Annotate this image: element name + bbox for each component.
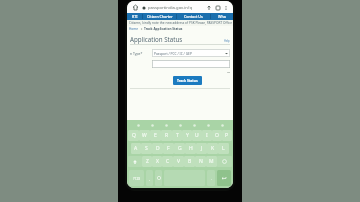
staticText: D xyxy=(156,145,160,152)
button[interactable]: Enter xyxy=(217,170,231,186)
staticText: N xyxy=(199,158,203,165)
button[interactable]: I xyxy=(202,130,212,141)
button[interactable]: N xyxy=(195,156,206,167)
button[interactable]: shift xyxy=(128,156,142,167)
staticText: V xyxy=(177,158,181,165)
button[interactable]: Keyboard tool 2 xyxy=(149,122,155,128)
button[interactable]: passportindia.gov.in/q xyxy=(142,5,204,11)
staticText: P xyxy=(225,132,229,139)
staticText: Home xyxy=(129,27,139,31)
button[interactable]: Emoji xyxy=(155,170,162,186)
button[interactable]: Keyboard tool 4 xyxy=(177,122,183,128)
staticText: Help xyxy=(224,39,230,43)
button[interactable]: G xyxy=(174,143,185,154)
staticText: » xyxy=(139,27,144,31)
staticText: I xyxy=(206,132,208,139)
button[interactable]: Contact Us xyxy=(177,13,210,20)
staticText: X xyxy=(156,158,159,165)
staticText: Z xyxy=(146,158,149,165)
staticText: S xyxy=(145,145,148,152)
button[interactable]: Keyboard tool 5 xyxy=(191,122,197,128)
staticText: M xyxy=(209,158,214,165)
staticText: R xyxy=(165,132,169,139)
button[interactable]: Comma xyxy=(146,170,153,186)
button[interactable]: B xyxy=(184,156,195,167)
button[interactable]: Passport / PCC / IC / GEP xyxy=(152,49,230,57)
staticText: O xyxy=(215,132,219,139)
staticText: J xyxy=(201,145,203,152)
button[interactable]: Keyboard tool 7 xyxy=(219,122,225,128)
staticText: E xyxy=(154,132,157,139)
button[interactable]: L xyxy=(218,143,229,154)
staticText: Y xyxy=(186,132,189,139)
button[interactable]: S xyxy=(141,143,152,154)
button[interactable]: T xyxy=(172,130,182,141)
staticText: Passport / PCC / IC / GEP xyxy=(154,51,192,55)
staticText: W xyxy=(142,132,147,139)
button[interactable]: Citizen Charter xyxy=(143,13,176,20)
button[interactable]: Keyboard tool 1 xyxy=(135,122,141,128)
staticText: n Type* xyxy=(130,51,152,56)
button[interactable]: W xyxy=(139,130,150,141)
button[interactable]: C xyxy=(162,156,173,167)
staticText: Track Status xyxy=(177,78,198,83)
button[interactable]: F xyxy=(163,143,174,154)
staticText: Wha xyxy=(218,14,226,19)
button[interactable]: V xyxy=(173,156,184,167)
button[interactable]: More options xyxy=(222,4,229,11)
button[interactable]: R xyxy=(161,130,172,141)
button[interactable]: P xyxy=(222,130,232,141)
button[interactable]: Track Status xyxy=(173,76,202,85)
button[interactable]: A xyxy=(131,143,141,154)
staticText: A xyxy=(134,145,138,152)
button[interactable]: O xyxy=(212,130,222,141)
staticText: U xyxy=(195,132,199,139)
button[interactable]: Backspace xyxy=(217,156,232,167)
staticText: K xyxy=(211,145,215,152)
staticText: F xyxy=(167,145,170,152)
button[interactable]: Keyboard tool 6 xyxy=(205,122,211,128)
staticText: G xyxy=(178,145,182,152)
staticText: Q xyxy=(132,132,136,139)
button[interactable]: U xyxy=(192,130,202,141)
button[interactable]: Home xyxy=(131,3,140,12)
button[interactable]: J xyxy=(196,143,207,154)
button[interactable]: Z xyxy=(142,156,152,167)
staticText: Track Application Status xyxy=(144,27,183,31)
staticText: H xyxy=(189,145,193,152)
button[interactable]: X xyxy=(152,156,162,167)
staticText: . xyxy=(211,176,212,181)
staticText: B xyxy=(188,158,192,165)
button[interactable]: Symbols xyxy=(129,170,144,186)
staticText: passportindia.gov.in/q xyxy=(148,5,192,11)
button[interactable]: D xyxy=(152,143,163,154)
button[interactable]: Share xyxy=(204,3,213,12)
button[interactable]: E xyxy=(150,130,161,141)
staticText: ?123 xyxy=(133,176,141,181)
staticText: T xyxy=(176,132,179,139)
button[interactable]: Y xyxy=(182,130,192,141)
staticText: Citizen Charter xyxy=(147,14,173,19)
staticText: dd xyxy=(227,70,230,73)
staticText: , xyxy=(149,176,150,181)
button[interactable]: M xyxy=(206,156,217,167)
staticText: Contact Us xyxy=(184,14,203,19)
button[interactable]: H xyxy=(185,143,196,154)
button[interactable]: RTI xyxy=(127,13,142,20)
button[interactable]: Tabs xyxy=(213,3,222,12)
button[interactable]: Wha xyxy=(211,13,233,20)
button[interactable]: Q xyxy=(128,130,139,141)
button[interactable]: Keyboard tool 3 xyxy=(163,122,169,128)
staticText: RTI xyxy=(132,14,138,19)
staticText: Application Status xyxy=(130,35,183,43)
button[interactable] xyxy=(152,60,230,68)
staticText: L xyxy=(222,145,225,152)
button[interactable]: K xyxy=(207,143,218,154)
staticText: C xyxy=(166,158,170,165)
staticText: Citizens, kindly note the new address of… xyxy=(129,21,232,25)
